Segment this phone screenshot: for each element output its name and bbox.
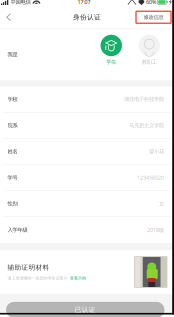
- button[interactable]: 已认证: [6, 302, 164, 317]
- staticText: 女: [159, 200, 164, 207]
- staticText: 中国电信: [10, 0, 30, 5]
- staticText: 修改信息: [143, 14, 163, 21]
- staticText: 性别: [7, 200, 17, 207]
- staticText: 辅助证明材料: [7, 263, 49, 271]
- staticText: 2018级: [147, 226, 164, 234]
- staticText: 教职工: [142, 59, 157, 65]
- button[interactable]: 学生: [100, 35, 122, 65]
- staticText: 60%: [146, 0, 156, 6]
- staticText: 姓名: [7, 148, 17, 155]
- staticText: 学校: [7, 96, 17, 103]
- staticText: 湖北电子科技学院: [124, 96, 164, 103]
- staticText: 院系: [7, 122, 17, 129]
- staticText: 身份认证: [73, 13, 101, 21]
- staticText: 学生: [106, 59, 116, 65]
- staticText: 学号: [7, 174, 17, 181]
- staticText: 17:07: [77, 0, 90, 6]
- button[interactable]: 修改信息: [136, 11, 174, 23]
- staticText: 已认证: [75, 306, 96, 314]
- staticText: 马克思主义学院: [129, 122, 164, 129]
- button[interactable]: 学生证照片: [134, 256, 167, 288]
- staticText: 查看示例: [70, 276, 86, 281]
- button[interactable]: 教职工: [138, 35, 160, 65]
- staticText: 请上传清晰的一张您的学生证照片: [7, 276, 67, 281]
- staticText: 123456520: [137, 174, 164, 181]
- staticText: 我是: [7, 51, 17, 58]
- button[interactable]: 查看示例: [70, 276, 86, 281]
- staticText: 入学年级: [7, 227, 27, 233]
- staticText: 曾小花: [149, 148, 164, 155]
- button[interactable]: 返回: [0, 9, 19, 25]
